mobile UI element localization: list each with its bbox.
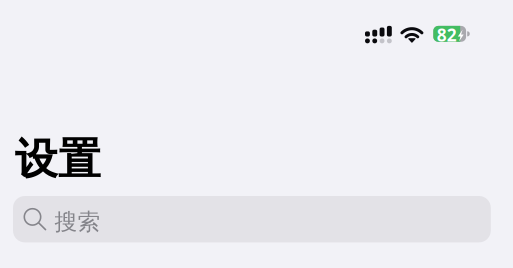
button[interactable]: 搜索 [13,196,491,242]
staticText: 设置 [15,133,101,185]
staticText: 82 [437,23,457,46]
staticText: 搜索 [54,208,100,236]
